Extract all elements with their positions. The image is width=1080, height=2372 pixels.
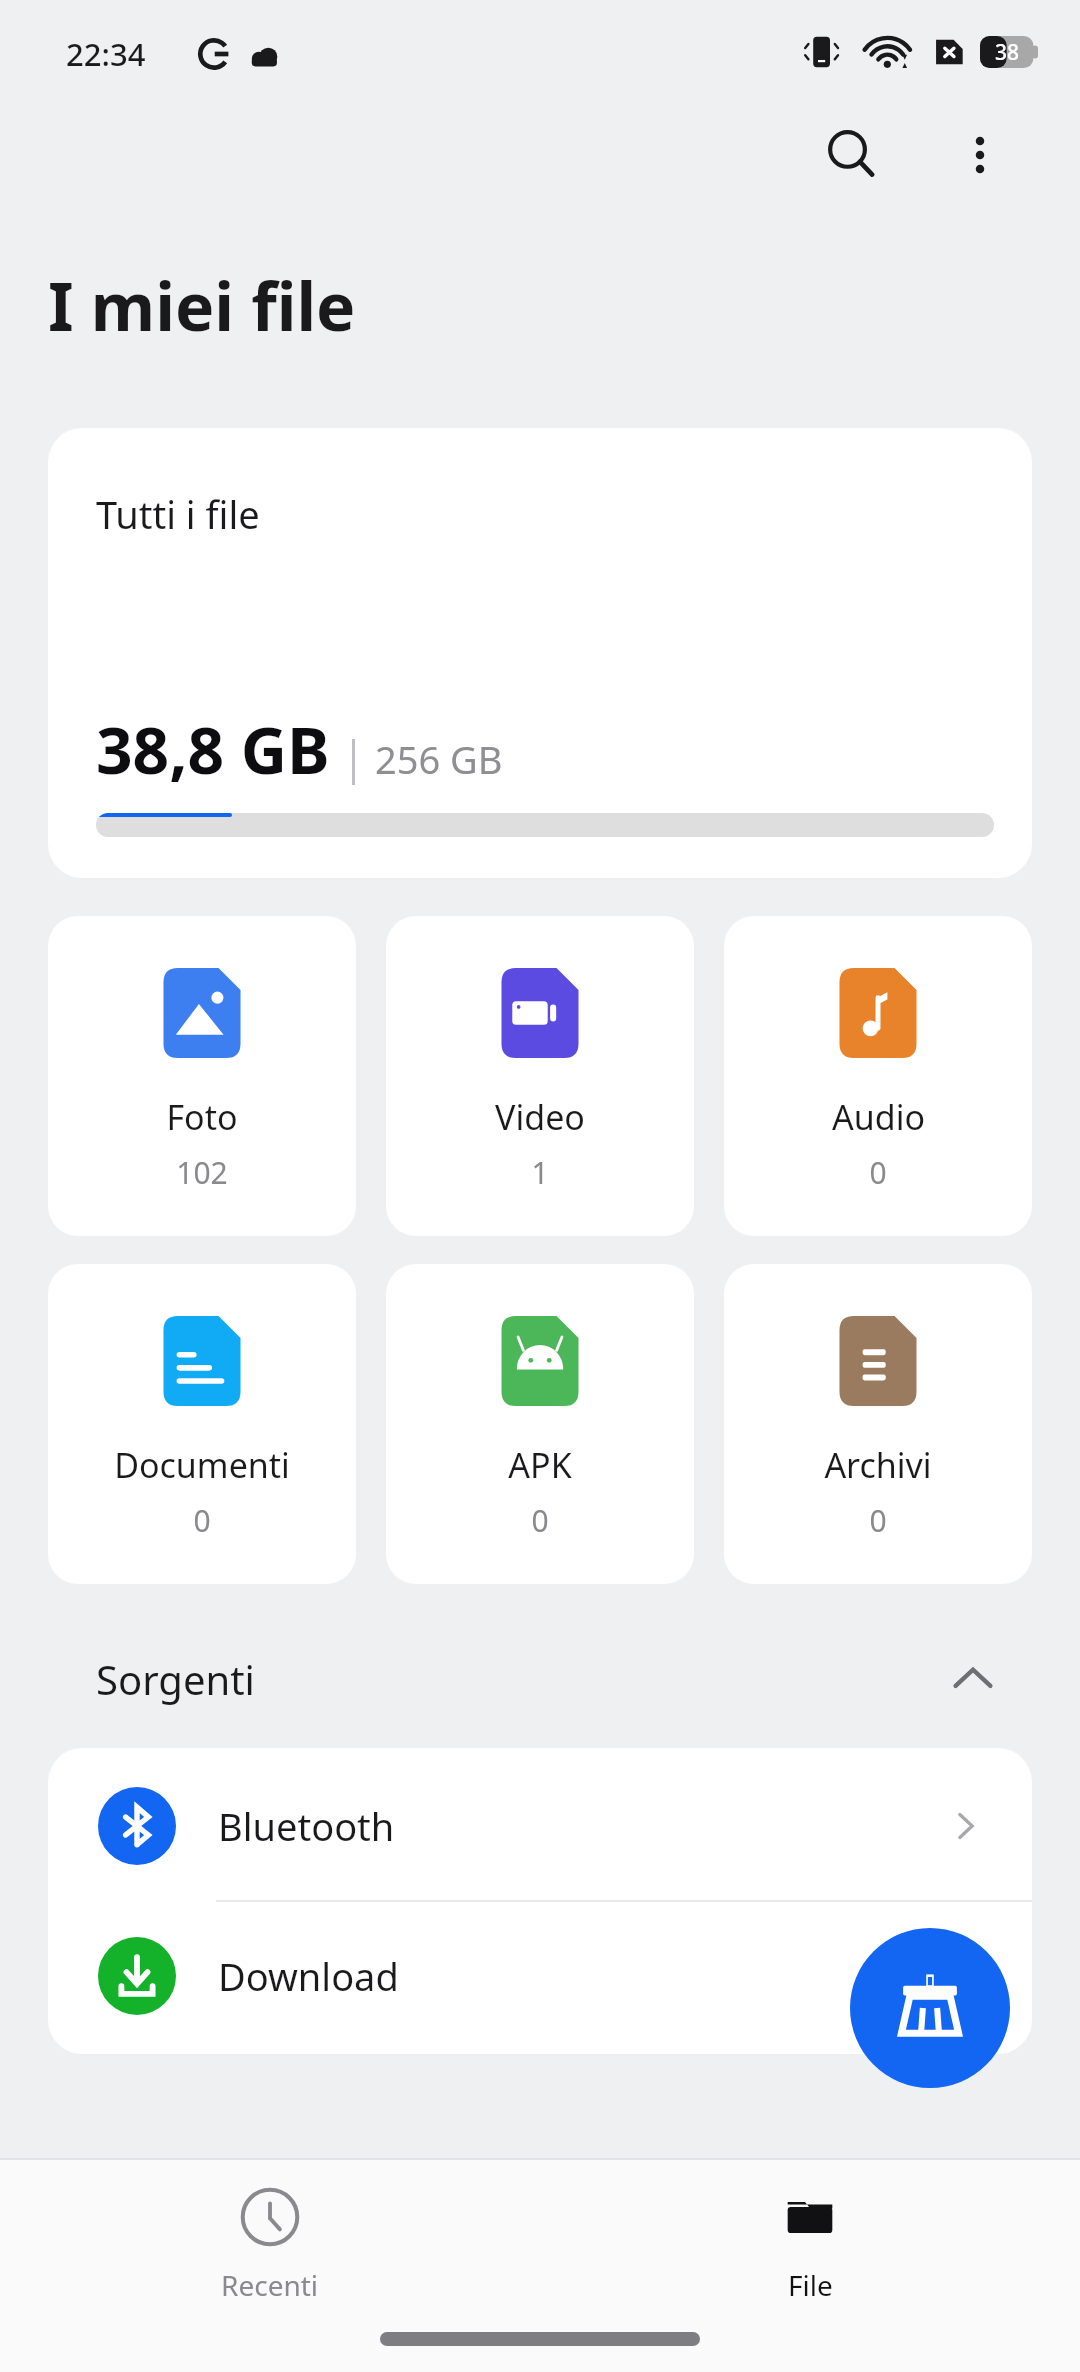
- staticText: APK: [508, 1442, 572, 1488]
- staticText: 38,8 GB: [96, 706, 330, 793]
- button[interactable]: Bluetooth: [48, 1752, 1032, 1900]
- button[interactable]: Video: [386, 916, 694, 1236]
- staticText: 22:34: [66, 33, 146, 75]
- staticText: 38: [995, 38, 1020, 67]
- staticText: 0: [531, 1500, 549, 1541]
- staticText: Download: [218, 1950, 399, 2002]
- staticText: Archivi: [824, 1442, 932, 1488]
- button[interactable]: APK: [386, 1264, 694, 1584]
- staticText: Bluetooth: [218, 1800, 395, 1852]
- button[interactable]: Documenti: [48, 1264, 356, 1584]
- button[interactable]: Cerca: [804, 107, 900, 203]
- staticText: File: [788, 2266, 833, 2304]
- staticText: Tutti i file: [96, 488, 260, 540]
- button[interactable]: Archivi: [724, 1264, 1032, 1584]
- button[interactable]: Altre opzioni: [932, 107, 1028, 203]
- button[interactable]: File: [540, 2158, 1080, 2328]
- button[interactable]: Download: [48, 1902, 1032, 2050]
- staticText: 102: [176, 1152, 228, 1193]
- staticText: Video: [495, 1094, 585, 1140]
- staticText: 0: [869, 1500, 887, 1541]
- button[interactable]: Tutti i file: [48, 428, 1032, 878]
- staticText: 0: [193, 1500, 211, 1541]
- button[interactable]: Pulisci: [850, 1928, 1010, 2088]
- staticText: I miei file: [48, 260, 356, 350]
- staticText: 0: [869, 1152, 887, 1193]
- staticText: Documenti: [114, 1442, 290, 1488]
- staticText: Foto: [166, 1094, 238, 1140]
- staticText: Audio: [832, 1094, 925, 1140]
- button[interactable]: Recenti: [0, 2158, 540, 2328]
- button[interactable]: Audio: [724, 916, 1032, 1236]
- staticText: Recenti: [221, 2266, 319, 2304]
- staticText: 256 GB: [375, 733, 503, 785]
- staticText: Sorgenti: [96, 1652, 255, 1706]
- button[interactable]: Sorgenti: [0, 1624, 1080, 1734]
- button[interactable]: Foto: [48, 916, 356, 1236]
- staticText: 1: [531, 1152, 549, 1193]
